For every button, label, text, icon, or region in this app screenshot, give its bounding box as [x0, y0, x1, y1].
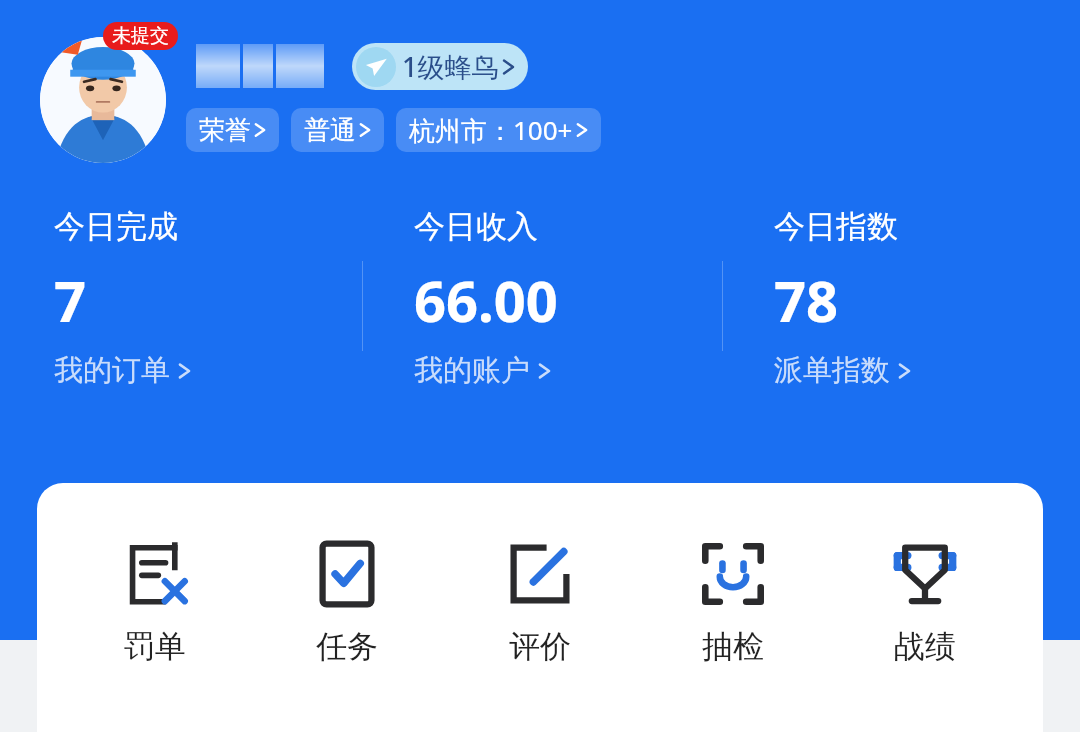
staticText: 我的账户	[414, 352, 530, 389]
staticText: 今日指数	[774, 207, 898, 246]
staticText: 评价	[509, 627, 571, 666]
staticText: 普通	[304, 114, 356, 147]
button[interactable]: 普通	[291, 108, 384, 152]
staticText: 未提交	[112, 24, 169, 48]
button[interactable]: 派单指数	[774, 352, 919, 389]
staticText: 1级蜂鸟	[402, 48, 499, 85]
staticText: 66.00	[414, 262, 558, 338]
staticText: 战绩	[894, 627, 956, 666]
button[interactable]: 罚单	[80, 537, 230, 670]
staticText: 7	[54, 262, 87, 338]
button[interactable]: 抽检	[658, 537, 808, 670]
button[interactable]: 评价	[465, 537, 615, 670]
button[interactable]: 我的账户	[414, 352, 559, 389]
staticText: 罚单	[124, 627, 186, 666]
button[interactable]: 我的订单	[54, 352, 199, 389]
button[interactable]: 杭州市：100+	[396, 108, 601, 152]
staticText: 78	[774, 262, 839, 338]
staticText: 杭州市：100+	[409, 112, 573, 148]
button[interactable]: 1级蜂鸟	[352, 43, 528, 90]
staticText: 今日收入	[414, 207, 538, 246]
button[interactable]: 荣誉	[186, 108, 279, 152]
button[interactable]: 战绩	[850, 537, 1000, 670]
button[interactable]: 任务	[272, 537, 422, 670]
staticText: 荣誉	[199, 114, 251, 147]
staticText: 派单指数	[774, 352, 890, 389]
button[interactable]: Profile avatar	[40, 37, 166, 163]
button[interactable]: 未提交	[103, 22, 178, 50]
staticText: 任务	[316, 627, 378, 666]
staticText: 抽检	[702, 627, 764, 666]
staticText: 我的订单	[54, 352, 170, 389]
staticText: 今日完成	[54, 207, 178, 246]
